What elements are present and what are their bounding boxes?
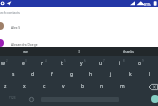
- staticText: x: [23, 83, 26, 90]
- button[interactable]: u: [91, 58, 111, 69]
- staticText: 5: [64, 59, 66, 63]
- button[interactable]: s: [3, 69, 23, 80]
- button[interactable]: g: [62, 69, 82, 80]
- button[interactable]: I: [63, 47, 95, 56]
- staticText: Alexandra Doege: [11, 42, 38, 46]
- staticText: 2: [6, 59, 8, 63]
- button[interactable]: t: [52, 58, 72, 69]
- staticText: 8: [123, 59, 125, 63]
- button[interactable]: Search: [151, 95, 158, 103]
- button[interactable]: v: [53, 81, 73, 92]
- staticText: b: [81, 83, 85, 90]
- staticText: 7: [103, 59, 105, 63]
- button[interactable]: k: [120, 69, 140, 80]
- staticText: g: [70, 71, 74, 78]
- staticText: 6: [84, 59, 86, 63]
- button[interactable]: y: [71, 58, 91, 69]
- staticText: z: [4, 83, 7, 90]
- staticText: 3: [25, 59, 27, 63]
- staticText: v: [62, 83, 65, 90]
- button[interactable]: x: [14, 81, 34, 92]
- button[interactable]: z: [0, 81, 15, 92]
- staticText: 4: [45, 59, 47, 63]
- button[interactable]: we: [9, 47, 41, 56]
- staticText: y: [80, 60, 83, 67]
- button[interactable]: Symbols: [3, 92, 21, 104]
- staticText: f: [51, 71, 53, 78]
- button[interactable]: Emoji: [24, 92, 39, 106]
- button[interactable]: n: [92, 81, 112, 92]
- button[interactable]: o: [130, 58, 150, 69]
- button[interactable]: Alexandra Doege: [0, 34, 158, 51]
- staticText: 9: [142, 59, 144, 63]
- staticText: we: [23, 49, 28, 54]
- button[interactable]: thanks: [112, 47, 144, 56]
- staticText: i: [119, 60, 121, 67]
- staticText: thanks: [123, 49, 134, 54]
- staticText: I: [78, 49, 80, 54]
- button[interactable]: f: [42, 69, 62, 80]
- button[interactable]: e: [13, 58, 33, 69]
- staticText: Alex S: [11, 25, 21, 29]
- staticText: o: [138, 60, 142, 67]
- button[interactable]: r: [32, 58, 52, 69]
- staticText: c: [43, 83, 46, 90]
- button[interactable]: Backspace: [144, 81, 158, 92]
- staticText: d: [31, 71, 35, 78]
- staticText: 91%: [144, 2, 151, 6]
- button[interactable]: i: [110, 58, 130, 69]
- button[interactable]: j: [101, 69, 121, 80]
- button[interactable]: c: [34, 81, 54, 92]
- staticText: ?123: [9, 96, 16, 100]
- button[interactable]: d: [23, 69, 43, 80]
- staticText: e: [22, 60, 25, 67]
- staticText: w: [1, 60, 5, 67]
- button[interactable]: Search contacts: [0, 7, 158, 16]
- staticText: m: [120, 83, 125, 90]
- button[interactable]: h: [81, 69, 101, 80]
- staticText: t: [61, 60, 63, 67]
- staticText: k: [129, 71, 132, 78]
- staticText: j: [110, 71, 112, 78]
- button[interactable]: m: [112, 81, 132, 92]
- staticText: u: [99, 60, 103, 67]
- button[interactable]: Alex S: [0, 17, 158, 34]
- staticText: n: [100, 83, 104, 90]
- staticText: Search contacts: [0, 10, 20, 15]
- staticText: h: [89, 71, 93, 78]
- button[interactable]: b: [73, 81, 93, 92]
- button[interactable]: w: [0, 58, 13, 69]
- button[interactable]: l: [140, 69, 158, 80]
- staticText: l: [149, 71, 151, 78]
- staticText: s: [12, 71, 15, 78]
- staticText: r: [41, 60, 44, 67]
